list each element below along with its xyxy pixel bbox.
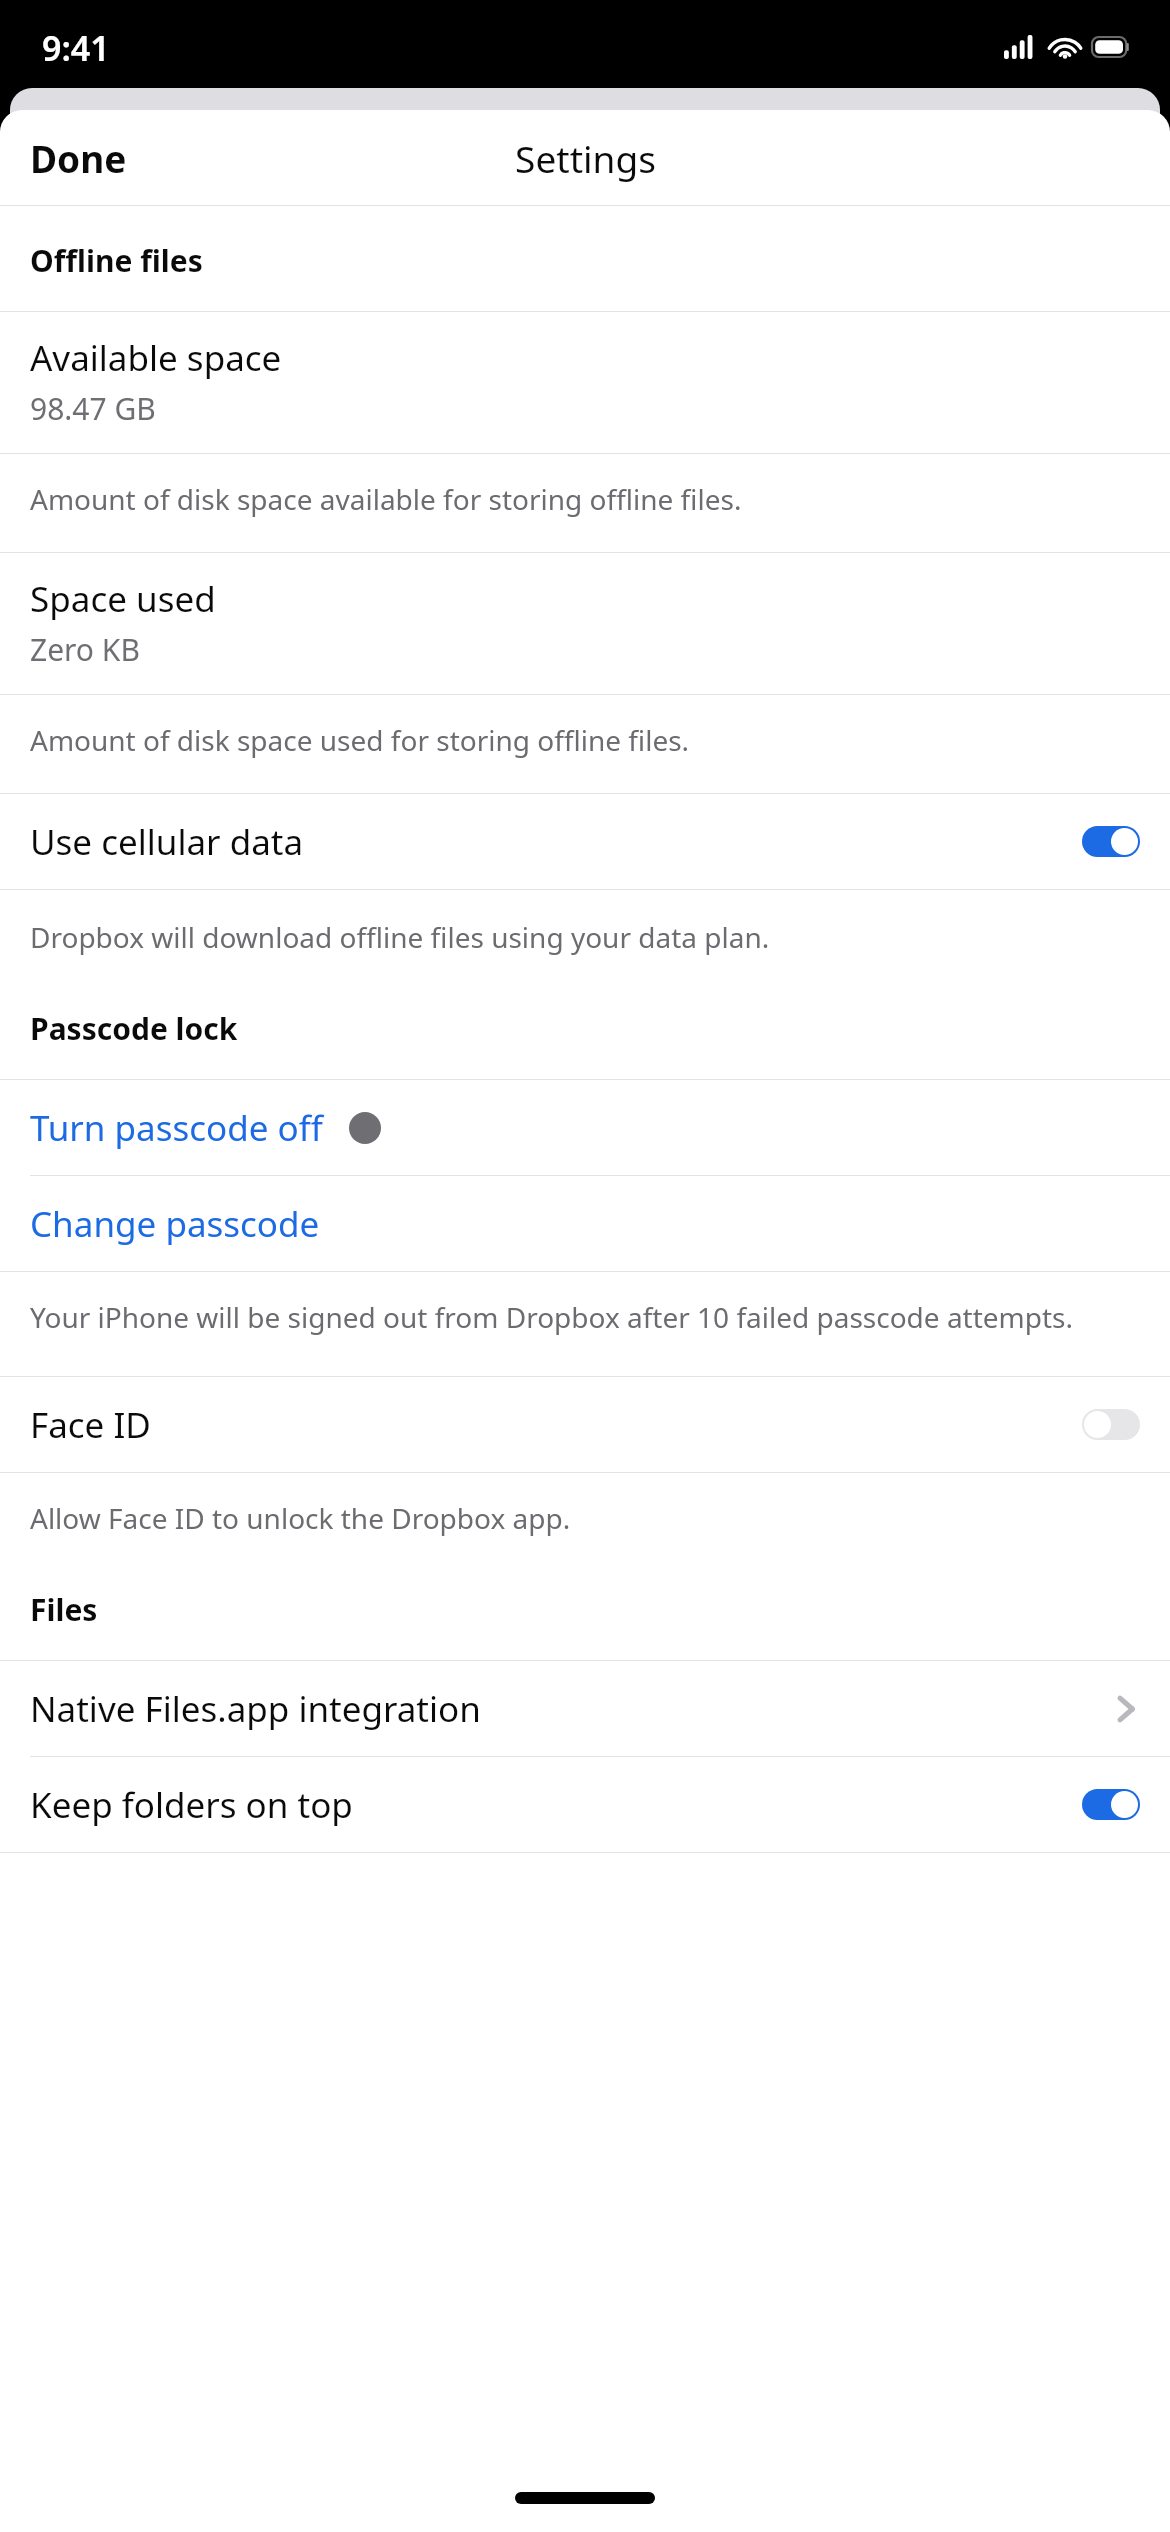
- button[interactable]: Turn passcode off: [0, 1080, 1170, 1175]
- button[interactable]: Face ID: [1082, 1409, 1140, 1440]
- staticText: Use cellular data: [30, 818, 1082, 866]
- staticText: Passcode lock: [30, 1008, 238, 1049]
- staticText: Amount of disk space used for storing of…: [30, 721, 690, 759]
- button[interactable]: Space used: [0, 553, 1170, 694]
- staticText: Files: [30, 1589, 98, 1630]
- staticText: Offline files: [30, 240, 203, 281]
- staticText: Allow Face ID to unlock the Dropbox app.: [30, 1499, 571, 1537]
- staticText: 98.47 GB: [30, 388, 156, 429]
- button[interactable]: Keep folders on top: [0, 1757, 1170, 1852]
- staticText: Space used: [30, 575, 216, 623]
- staticText: 9:41: [42, 25, 110, 71]
- staticText: Dropbox will download offline files usin…: [30, 918, 770, 956]
- staticText: Turn passcode off: [30, 1104, 323, 1152]
- button[interactable]: Available space: [0, 312, 1170, 453]
- staticText: Available space: [30, 334, 282, 382]
- staticText: Your iPhone will be signed out from Drop…: [30, 1298, 1074, 1336]
- staticText: Face ID: [30, 1401, 1082, 1449]
- staticText: Amount of disk space available for stori…: [30, 480, 742, 518]
- button[interactable]: Done: [0, 123, 147, 193]
- staticText: Native Files.app integration: [30, 1685, 1116, 1733]
- staticText: Done: [30, 133, 127, 183]
- staticText: Keep folders on top: [30, 1781, 1082, 1829]
- staticText: Settings: [515, 133, 656, 183]
- button[interactable]: Keep folders on top: [1082, 1789, 1140, 1820]
- button[interactable]: Face ID: [0, 1377, 1170, 1472]
- button[interactable]: Change passcode: [0, 1176, 1170, 1271]
- button[interactable]: Native Files.app integration: [0, 1661, 1170, 1756]
- button[interactable]: Use cellular data: [0, 794, 1170, 889]
- button[interactable]: Use cellular data: [1082, 826, 1140, 857]
- staticText: Zero KB: [30, 629, 140, 670]
- staticText: Change passcode: [30, 1200, 320, 1248]
